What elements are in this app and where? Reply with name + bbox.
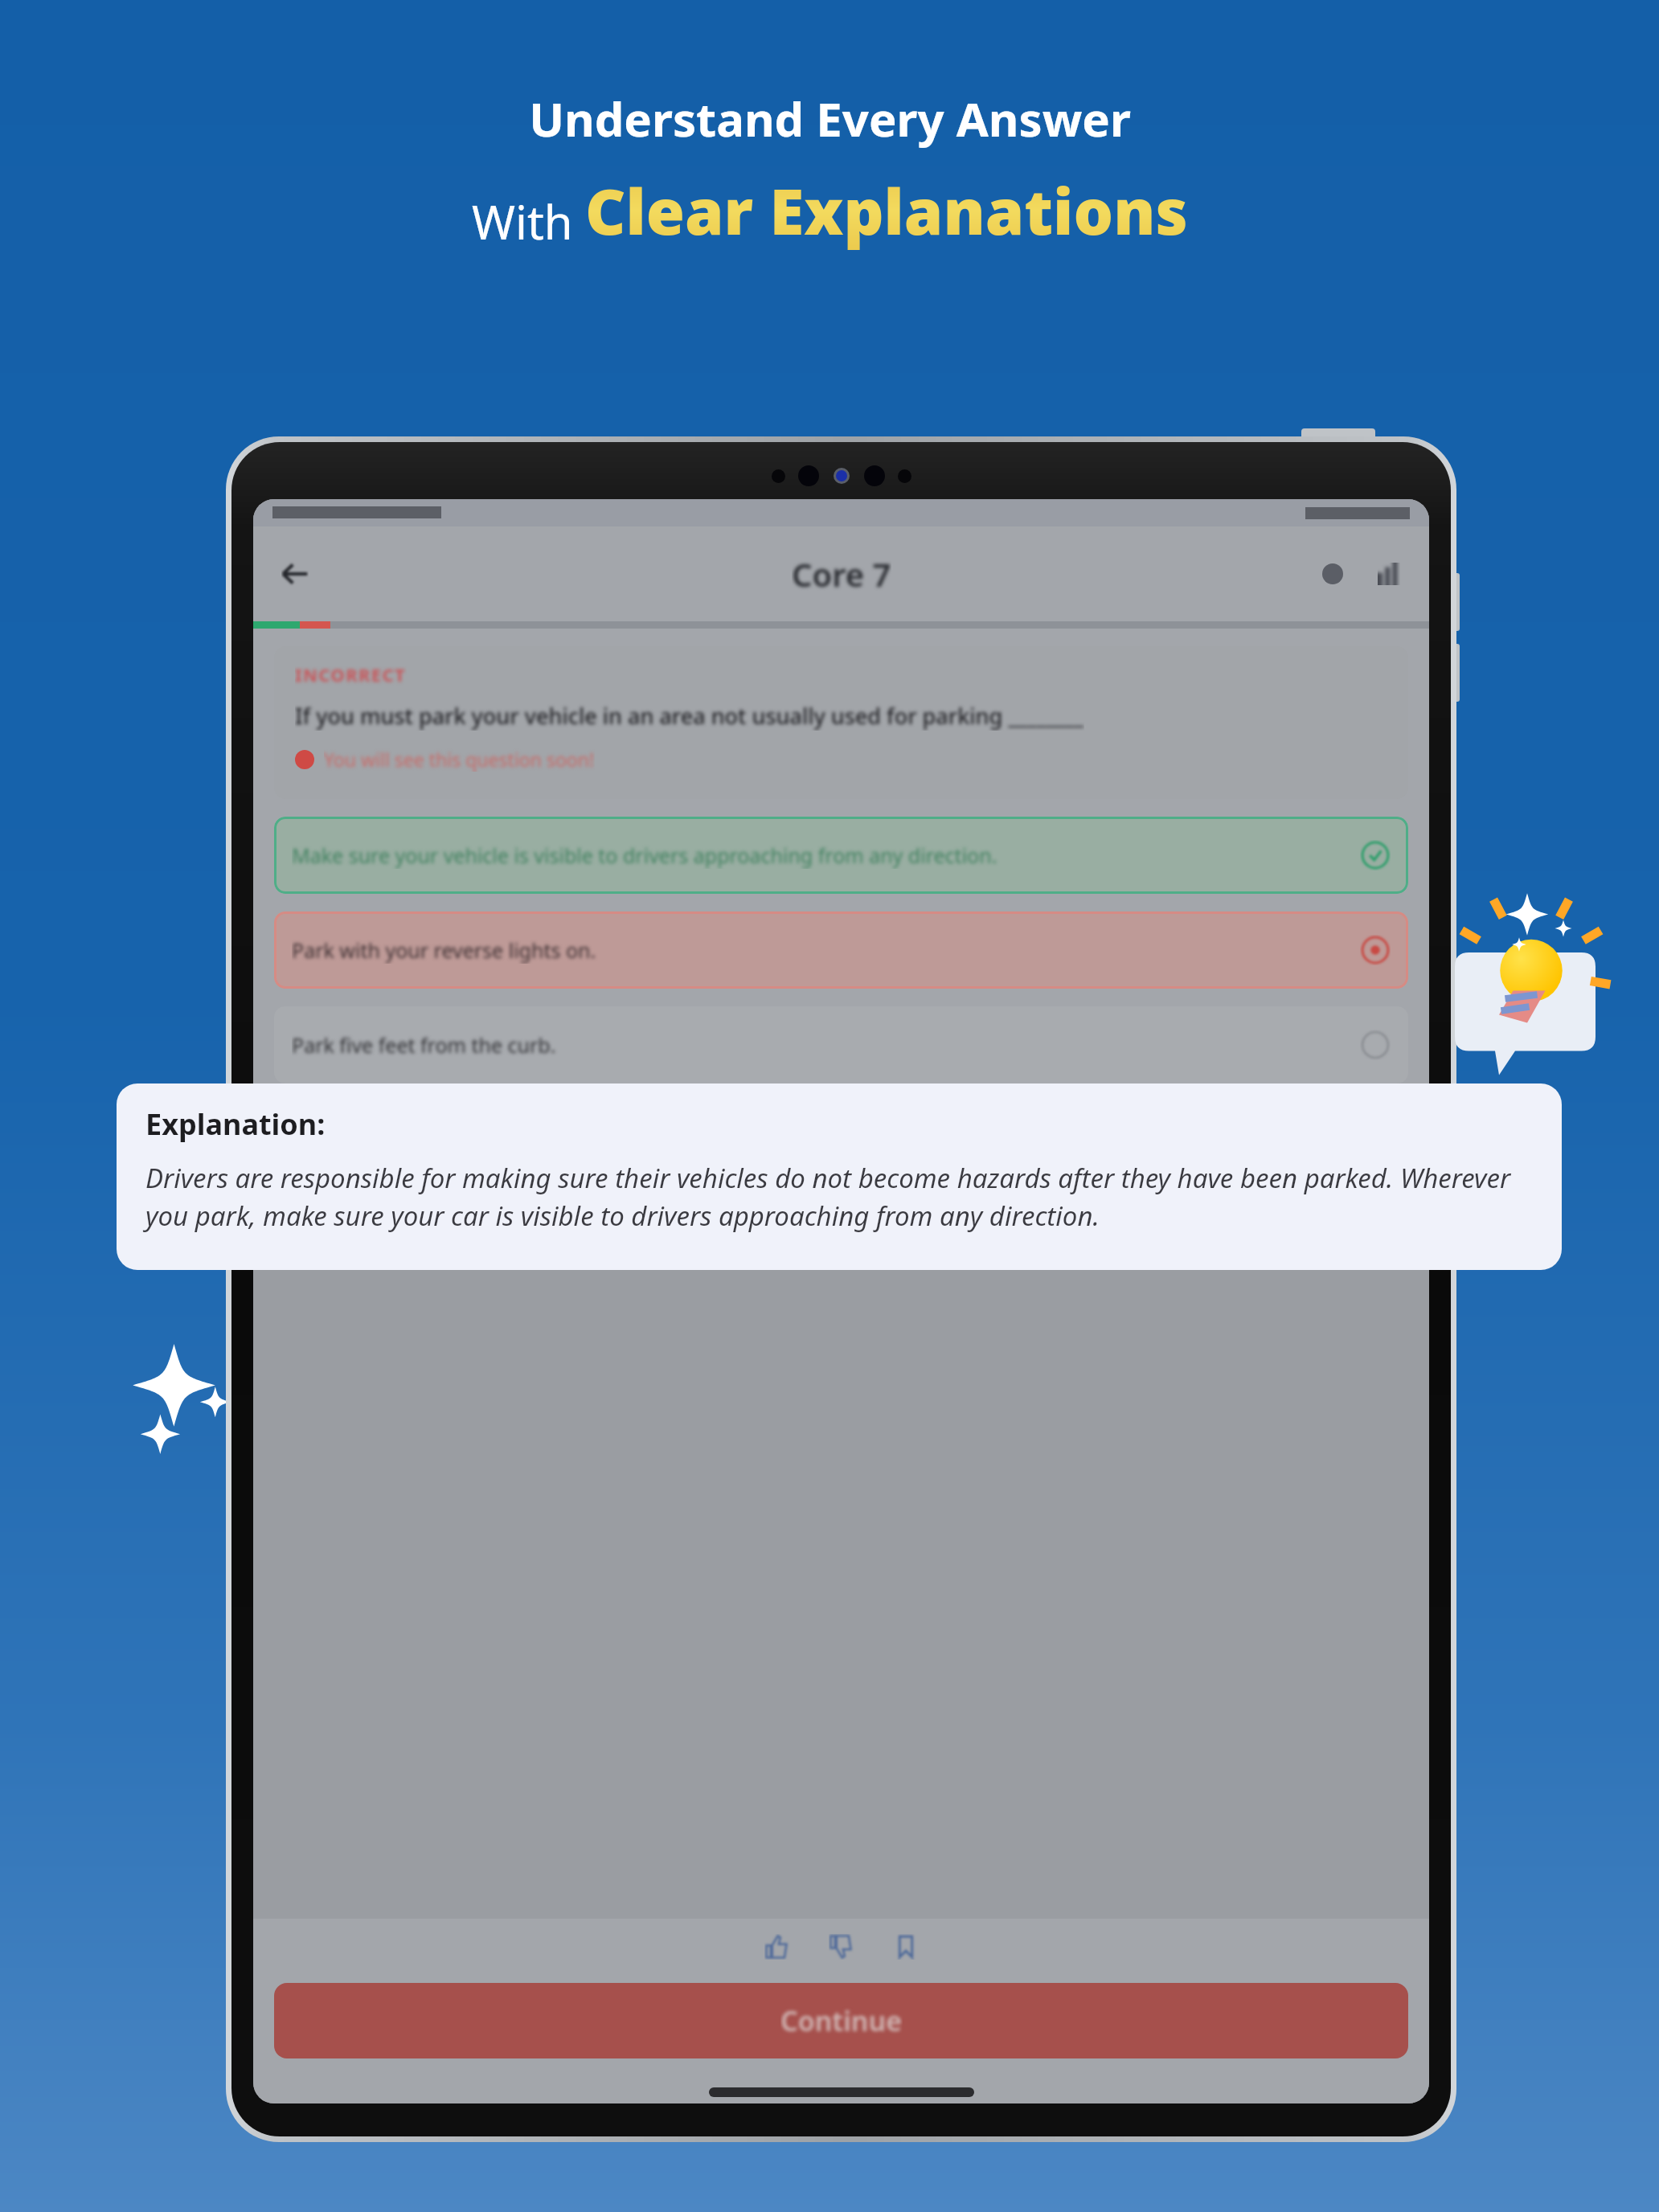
staticText: Continue	[780, 2002, 903, 2039]
staticText: Drivers are responsible for making sure …	[145, 1160, 1533, 1234]
button[interactable]: More	[1366, 551, 1411, 596]
staticText: Core 7	[792, 552, 891, 596]
button[interactable]: Settings	[1310, 551, 1355, 596]
button[interactable]: Back	[269, 548, 321, 600]
staticText: With	[472, 190, 585, 253]
button[interactable]: Like	[754, 1923, 801, 1970]
staticText: If you must park your vehicle in an area…	[295, 701, 1084, 731]
button[interactable]: Continue	[274, 1983, 1408, 2058]
staticText: INCORRECT	[295, 662, 407, 686]
staticText: Clear Explanations	[585, 168, 1188, 253]
button[interactable]: Dislike	[818, 1923, 865, 1970]
staticText: Explanation:	[145, 1104, 326, 1144]
staticText: You will see this question soon!	[324, 747, 595, 772]
button[interactable]: Make sure your vehicle is visible to dri…	[274, 817, 1408, 894]
staticText: Understand Every Answer	[529, 87, 1131, 150]
staticText: Park with your reverse lights on.	[292, 936, 1350, 964]
staticText: Make sure your vehicle is visible to dri…	[292, 842, 1350, 869]
button[interactable]: Park with your reverse lights on.	[274, 911, 1408, 989]
button[interactable]: Explanation:	[117, 1083, 1562, 1270]
staticText: Park five feet from the curb.	[292, 1031, 1350, 1059]
button[interactable]: Bookmark	[883, 1923, 929, 1970]
button[interactable]: Park five feet from the curb.	[274, 1006, 1408, 1083]
other: Idea	[1443, 880, 1644, 1089]
